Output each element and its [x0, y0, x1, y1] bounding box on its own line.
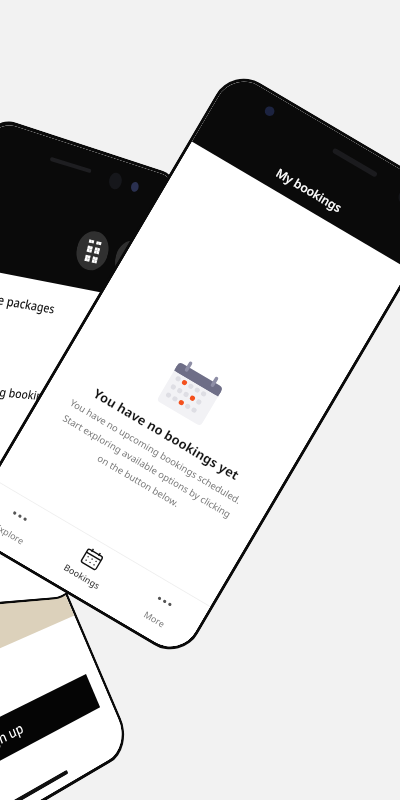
- button[interactable]: Scan barcode: [111, 237, 149, 281]
- staticText: Upcoming bookings: [0, 379, 56, 404]
- button[interactable]: Explore: [0, 479, 65, 572]
- staticText: Bookings: [62, 561, 102, 591]
- staticText: My bookings: [274, 164, 345, 216]
- staticText: 0: [0, 498, 19, 528]
- staticText: You have no upcoming bookings scheduled.…: [47, 394, 247, 538]
- staticText: Active packages: [0, 285, 57, 317]
- staticText: More: [142, 608, 168, 630]
- staticText: Weekly streak: [0, 529, 31, 543]
- button[interactable]: Sign up: [0, 674, 100, 800]
- staticText: Sign up: [0, 718, 26, 757]
- staticText: Explore: [0, 520, 27, 547]
- button[interactable]: Bookings: [36, 522, 138, 614]
- staticText: You have no bookings yet: [90, 384, 243, 484]
- button[interactable]: More: [108, 564, 210, 657]
- button[interactable]: 0: [0, 479, 90, 562]
- button[interactable]: Scan QR code: [72, 228, 113, 273]
